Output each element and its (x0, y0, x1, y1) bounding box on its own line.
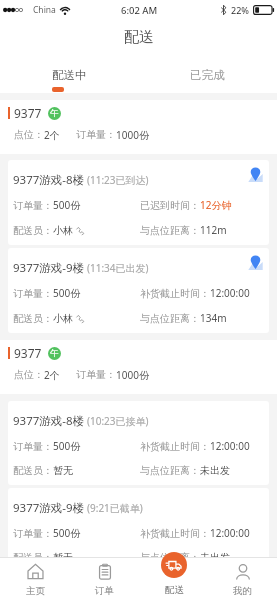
staticText: 9377游戏-8楼 (13, 172, 85, 188)
staticText: 12:00:00 (210, 439, 250, 453)
staticText: 9377游戏-9楼 (13, 500, 85, 516)
staticText: 订单量： (13, 199, 53, 212)
staticText: 配送 (165, 584, 184, 596)
staticText: 暂无 (53, 464, 73, 477)
staticText: 补货截止时间： (140, 527, 210, 540)
staticText: 配送中 (52, 68, 87, 82)
staticText: 22% (231, 4, 249, 16)
staticText: 未出发 (200, 464, 230, 477)
staticText: 12:00:00 (210, 526, 250, 540)
staticText: 1000份 (116, 128, 149, 142)
staticText: 1000份 (116, 368, 149, 382)
staticText: 补货截止时间： (140, 287, 210, 300)
staticText: 与点位距离： (140, 551, 200, 564)
staticText: 配送员： (13, 551, 53, 564)
staticText: 134m (200, 311, 227, 325)
button[interactable]: 已完成 (138, 56, 277, 93)
staticText: 点位： (14, 128, 44, 141)
button[interactable]: 9377游戏-9楼 (8, 488, 269, 572)
button[interactable]: 9377游戏-8楼 (8, 160, 269, 245)
staticText: 已迟到时间： (140, 199, 200, 212)
button[interactable]: 9377游戏-8楼 (8, 401, 269, 485)
staticText: (9:21已截单) (87, 501, 143, 515)
staticText: (11:34已出发) (87, 261, 149, 275)
staticText: 500份 (53, 198, 81, 212)
staticText: 9377游戏-8楼 (13, 413, 85, 429)
staticText: 未出发 (200, 551, 230, 564)
button[interactable]: 我的 (208, 557, 277, 600)
staticText: 与点位距离： (140, 464, 200, 477)
staticText: 配送员： (13, 312, 53, 325)
staticText: 订单量： (13, 527, 53, 540)
staticText: 午 (50, 108, 59, 119)
staticText: 9377 (14, 345, 42, 361)
staticText: 补货截止时间： (140, 440, 210, 453)
staticText: 112m (200, 223, 227, 237)
staticText: (11:23已到达) (87, 173, 149, 187)
staticText: 订单 (95, 585, 114, 597)
staticText: 12分钟 (200, 198, 232, 212)
staticText: 主页 (26, 585, 45, 597)
button[interactable]: 9377 (0, 340, 277, 394)
button[interactable]: 查看地图位置 (248, 167, 263, 182)
button[interactable]: 9377 (0, 100, 277, 154)
staticText: 订单量： (76, 368, 116, 381)
staticText: 订单量： (13, 287, 53, 300)
staticText: 配送员： (13, 464, 53, 477)
staticText: 小林 (53, 224, 73, 237)
staticText: 配送 (124, 28, 154, 47)
staticText: 暂无 (53, 551, 73, 564)
staticText: 与点位距离： (140, 312, 200, 325)
button[interactable]: 配送中 (0, 56, 138, 93)
staticText: 500份 (53, 526, 81, 540)
staticText: 12:00:00 (210, 286, 250, 300)
staticText: 订单量： (13, 440, 53, 453)
staticText: 点位： (14, 368, 44, 381)
staticText: 已完成 (190, 68, 225, 82)
button[interactable]: 主页 (0, 557, 70, 600)
staticText: 我的 (233, 585, 252, 597)
staticText: 订单量： (76, 128, 116, 141)
staticText: 500份 (53, 439, 81, 453)
staticText: 2个 (44, 128, 60, 142)
button[interactable]: 查看地图位置 (248, 255, 263, 270)
staticText: (10:23已接单) (87, 414, 149, 428)
staticText: 9377 (14, 105, 42, 121)
staticText: 9377游戏-9楼 (13, 260, 85, 276)
staticText: 2个 (44, 368, 60, 382)
staticText: China (33, 4, 56, 16)
staticText: 配送员： (13, 224, 53, 237)
staticText: 与点位距离： (140, 224, 200, 237)
staticText: 500份 (53, 286, 81, 300)
staticText: 6:02 AM (121, 4, 158, 17)
staticText: 午 (50, 348, 59, 359)
button[interactable]: 配送 (139, 557, 208, 600)
button[interactable]: 9377游戏-9楼 (8, 248, 269, 333)
button[interactable]: 订单 (70, 557, 139, 600)
staticText: 小林 (53, 312, 73, 325)
